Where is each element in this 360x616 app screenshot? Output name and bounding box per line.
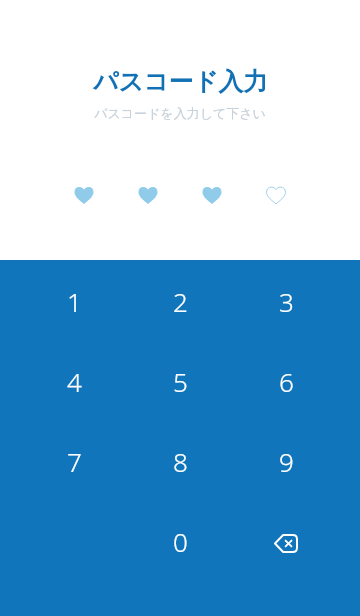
staticText: 0	[173, 524, 188, 559]
staticText: パスコードを入力して下さい	[94, 105, 266, 121]
staticText: 7	[67, 444, 82, 479]
button[interactable]: 3	[233, 261, 339, 341]
staticText: 3	[279, 284, 294, 319]
staticText: 1	[67, 284, 82, 319]
staticText: 9	[279, 444, 294, 479]
staticText: 6	[279, 364, 294, 399]
button[interactable]: 2	[127, 261, 233, 341]
staticText: パスコード入力	[93, 66, 268, 97]
button[interactable]: 1	[21, 261, 127, 341]
button[interactable]: 5	[127, 341, 233, 421]
staticText: 8	[173, 444, 188, 479]
button[interactable]: 9	[233, 421, 339, 501]
staticText: 2	[173, 284, 188, 319]
button[interactable]: Delete	[233, 501, 339, 581]
button[interactable]: 7	[21, 421, 127, 501]
button[interactable]: 8	[127, 421, 233, 501]
button[interactable]: 6	[233, 341, 339, 421]
staticText: 5	[173, 364, 188, 399]
button[interactable]: 4	[21, 341, 127, 421]
button[interactable]: 0	[127, 501, 233, 581]
staticText: 4	[67, 364, 82, 399]
